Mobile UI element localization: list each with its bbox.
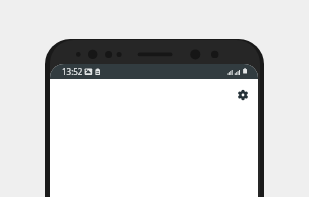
button[interactable]: Settings xyxy=(233,85,253,105)
staticText: 13:52 xyxy=(62,66,83,77)
